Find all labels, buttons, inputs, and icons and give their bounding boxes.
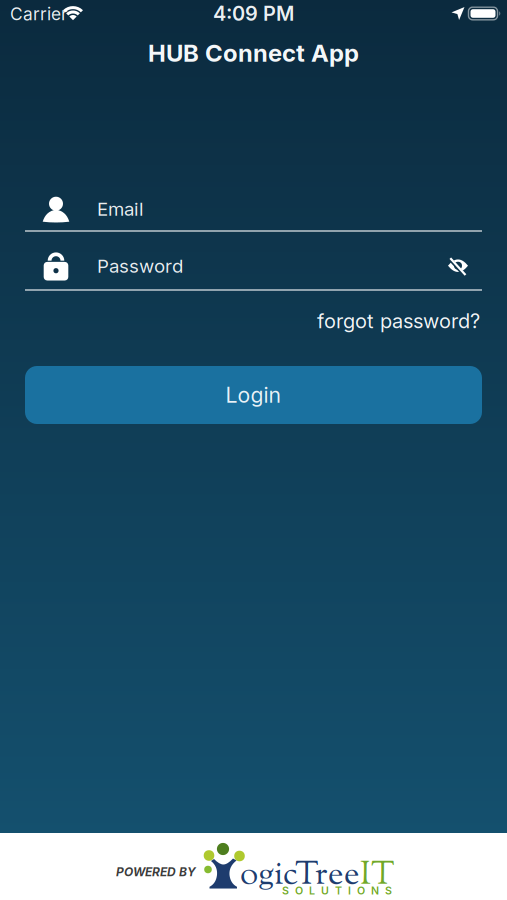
staticText: Email [97, 198, 144, 220]
staticText: Carrier [10, 4, 68, 24]
staticText: ogicTree [240, 852, 360, 898]
button[interactable]: Show password [441, 252, 475, 282]
staticText: Login [225, 382, 281, 408]
staticText: 4:09 PM [213, 2, 294, 25]
button[interactable]: forgot password? [317, 309, 480, 333]
staticText: HUB Connect App [148, 39, 359, 67]
staticText: POWERED BY [116, 865, 196, 879]
staticText: IT [360, 852, 394, 898]
button[interactable]: Email [25, 190, 482, 230]
staticText: forgot password? [317, 309, 480, 333]
staticText: S O L U T I O N S [282, 884, 392, 897]
button[interactable]: Login [25, 366, 482, 424]
button[interactable]: Password [25, 248, 425, 288]
staticText: Password [97, 255, 183, 277]
